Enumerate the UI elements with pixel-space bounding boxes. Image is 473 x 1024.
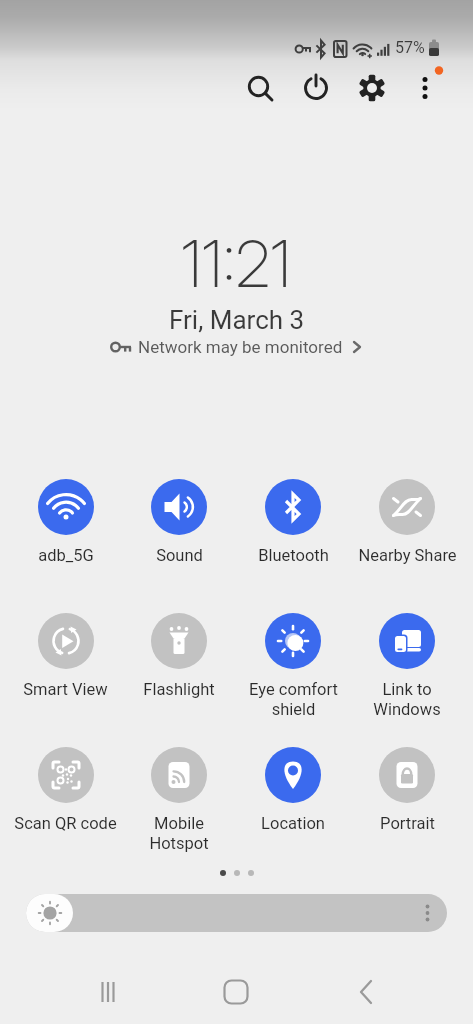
staticText: Sound <box>156 546 203 565</box>
button[interactable]: Settings <box>351 66 393 108</box>
button[interactable]: More options <box>405 66 447 108</box>
button[interactable]: Scan QR code <box>9 747 122 833</box>
button[interactable] <box>26 894 447 932</box>
staticText: Scan QR code <box>14 814 117 833</box>
staticText: Flashlight <box>143 680 215 699</box>
staticText: Link to Windows <box>373 680 441 719</box>
button[interactable] <box>234 870 240 876</box>
staticText: 11:21 <box>181 225 292 302</box>
staticText: Mobile Hotspot <box>149 814 209 853</box>
staticText: adb_5G <box>38 546 94 565</box>
button[interactable]: Home <box>204 960 268 1024</box>
button[interactable]: Location <box>236 747 350 833</box>
button[interactable]: Brightness options <box>405 894 447 932</box>
staticText: 57% <box>395 38 425 57</box>
staticText: Location <box>261 814 325 833</box>
button[interactable]: Bluetooth <box>236 479 350 565</box>
button[interactable] <box>248 870 254 876</box>
button[interactable]: Recent apps <box>76 960 140 1024</box>
button[interactable]: Network may be monitored <box>110 337 363 357</box>
staticText: Bluetooth <box>258 546 329 565</box>
button[interactable]: Nearby Share <box>350 479 464 565</box>
staticText: Portrait <box>380 814 435 833</box>
button[interactable]: Power off <box>295 66 337 108</box>
button[interactable]: Smart View <box>9 613 122 699</box>
button[interactable]: Search <box>240 68 282 110</box>
button[interactable]: Back <box>335 960 399 1024</box>
button[interactable]: Eye comfort shield <box>236 613 350 719</box>
button[interactable] <box>220 870 226 876</box>
button[interactable]: Link to Windows <box>350 613 464 719</box>
staticText: Eye comfort shield <box>249 680 338 719</box>
button[interactable]: adb_5G <box>9 479 122 565</box>
staticText: Smart View <box>23 680 108 699</box>
button[interactable]: Flashlight <box>122 613 236 699</box>
button[interactable]: Mobile Hotspot <box>122 747 236 853</box>
staticText: Fri, March 3 <box>169 305 305 335</box>
button[interactable]: Portrait <box>350 747 464 833</box>
staticText: Network may be monitored <box>138 337 343 357</box>
button[interactable]: Sound <box>122 479 236 565</box>
staticText: Nearby Share <box>358 546 457 565</box>
